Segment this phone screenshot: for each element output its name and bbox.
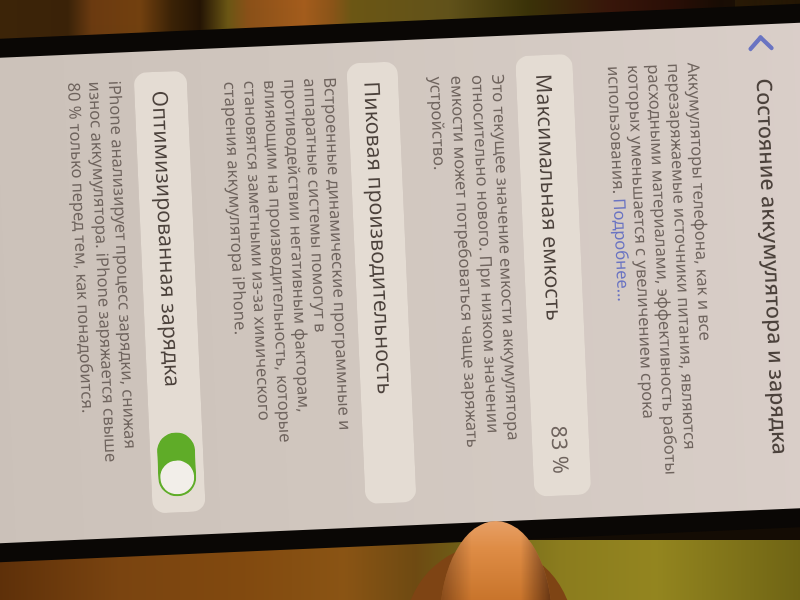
button[interactable]: Максимальная емкость <box>515 54 591 497</box>
staticText: Пиковая производительность <box>358 81 401 395</box>
staticText: Состояние аккумулятора и зарядка <box>750 78 796 456</box>
button[interactable]: Optimized Battery Charging <box>156 432 197 497</box>
staticText: Аккумуляторы телефона, как и все перезар… <box>604 62 724 481</box>
staticText: iPhone анализирует процесс зарядки, сниж… <box>63 80 144 483</box>
button[interactable]: Пиковая производительность <box>346 61 416 504</box>
staticText: Оптимизированная зарядка <box>146 90 188 388</box>
button[interactable]: Back <box>740 22 782 63</box>
staticText: 83 % <box>545 425 576 475</box>
staticText: Максимальная емкость <box>530 73 570 321</box>
staticText: Это текущее значение емкости аккумулятор… <box>425 73 527 477</box>
button[interactable]: Оптимизированная зарядка <box>133 71 206 513</box>
staticText: Встроенные динамические программные и ап… <box>219 77 359 482</box>
